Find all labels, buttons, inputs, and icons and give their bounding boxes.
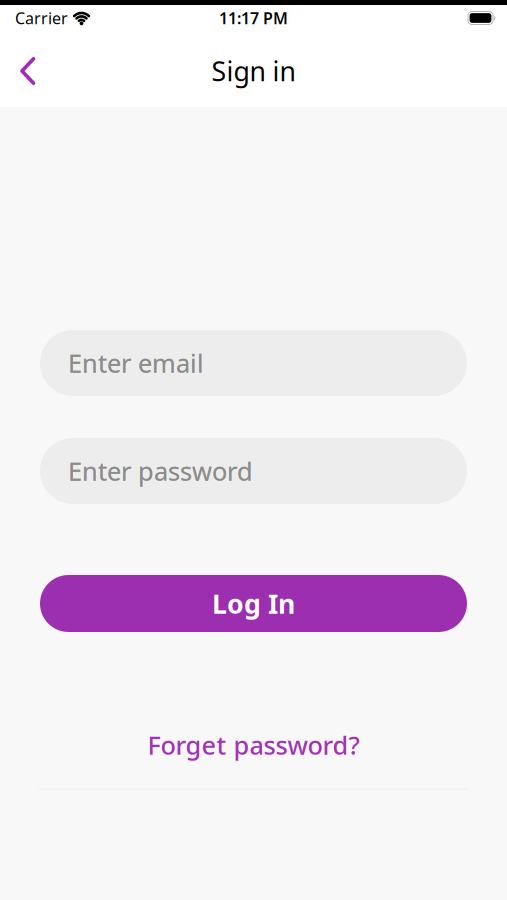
secureTextField[interactable]: Enter password [68,454,467,488]
staticText: Enter email [68,346,204,380]
staticText: Sign in [211,53,295,89]
staticText: Enter password [68,454,253,488]
staticText: Enter password [68,454,253,488]
staticText: Carrier [15,7,68,29]
staticText: Forget password? [147,728,359,762]
button[interactable]: Back [0,47,36,95]
staticText: Log In [212,586,295,621]
button[interactable]: Log In [40,575,467,632]
textField[interactable]: Enter email [68,346,467,380]
staticText: Enter email [68,346,204,380]
button[interactable]: Forget password? [147,728,359,762]
staticText: 11:17 PM [219,7,288,29]
